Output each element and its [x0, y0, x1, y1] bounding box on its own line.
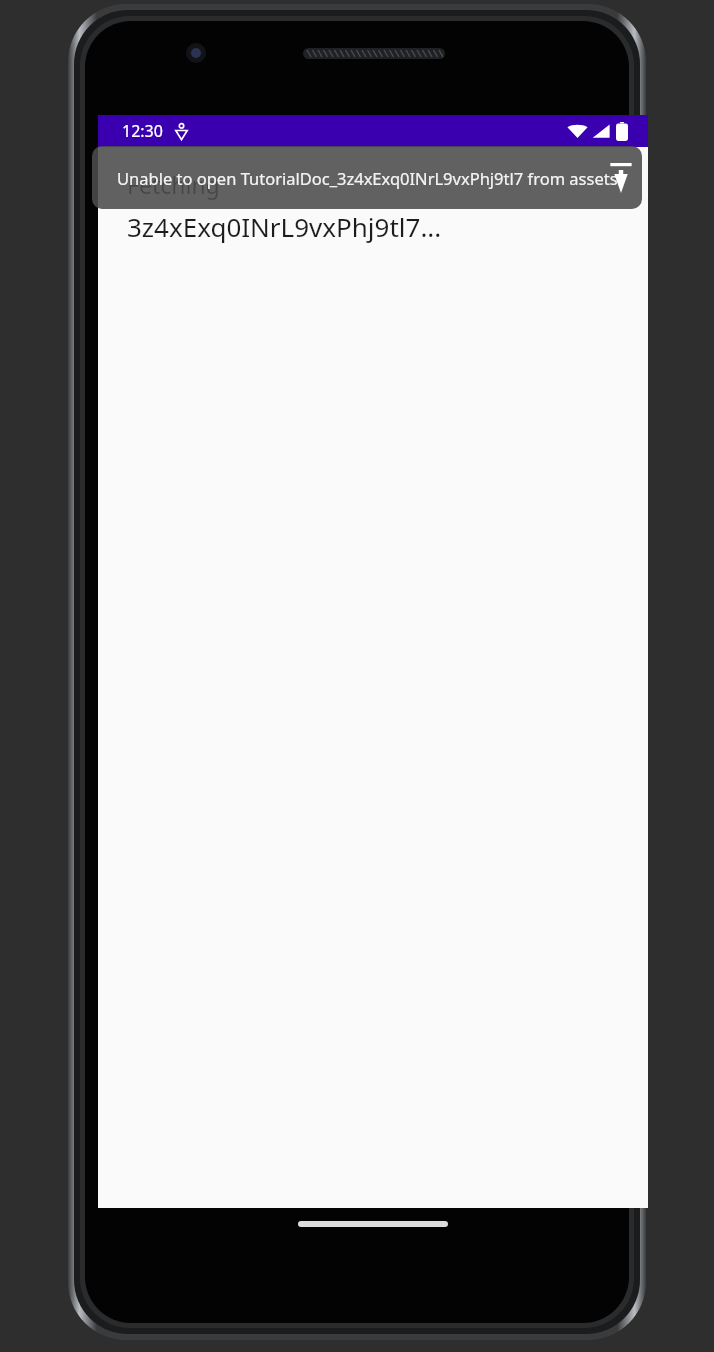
staticText: 3z4xExq0INrL9vxPhj9tl7...: [127, 209, 442, 244]
staticText: Unable to open TutorialDoc_3z4xExq0INrL9…: [117, 167, 618, 189]
staticText: Fetching: [127, 169, 220, 200]
button[interactable]: Unable to open TutorialDoc_3z4xExq0INrL9…: [92, 146, 642, 209]
staticText: 12:30: [122, 120, 163, 142]
